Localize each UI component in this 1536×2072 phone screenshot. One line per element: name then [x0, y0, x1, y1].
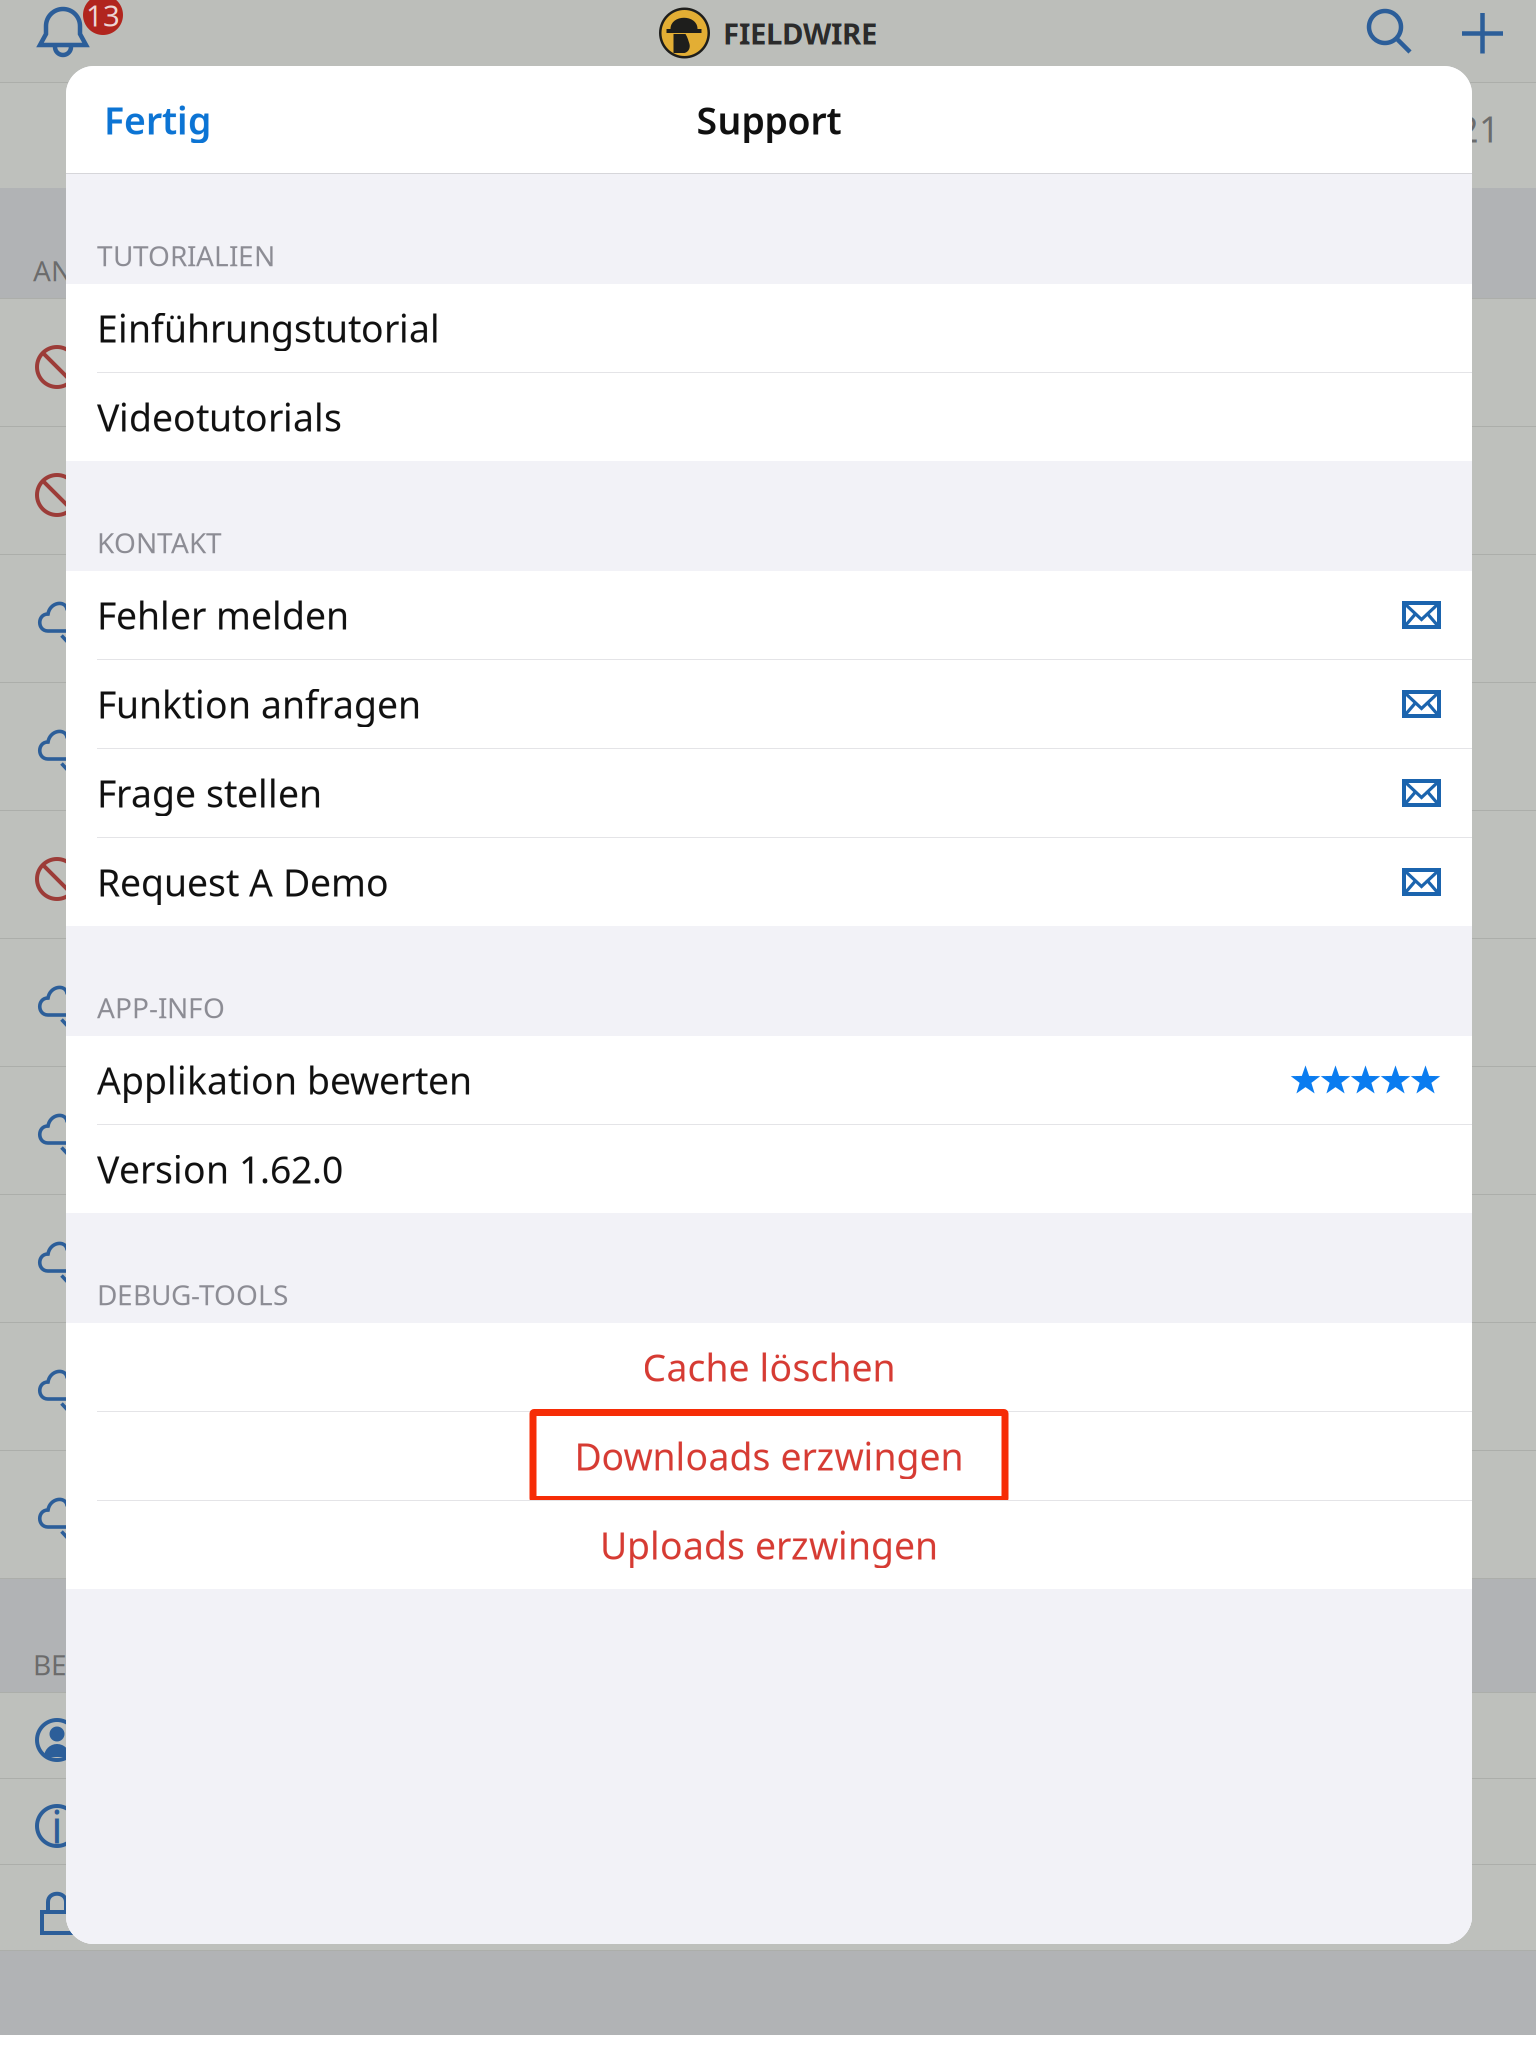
staticText: Downloads erzwingen — [574, 1431, 963, 1481]
staticText: Einführungstutorial — [97, 303, 440, 353]
button[interactable]: Funktion anfragen — [66, 660, 1472, 748]
staticText: Videotutorials — [97, 392, 342, 442]
button[interactable]: Videotutorials — [66, 373, 1472, 461]
button[interactable]: Downloadable view — [0, 1451, 1536, 1579]
staticText: Version 1.62.0 — [97, 1144, 343, 1194]
button[interactable]: Downloadable view — [0, 1067, 1536, 1195]
staticText: Fertig — [104, 95, 211, 145]
button[interactable]: Downloadable view — [0, 939, 1536, 1067]
button[interactable]: Hidden view — [0, 299, 1536, 427]
button[interactable]: Fehler melden — [66, 571, 1472, 659]
button[interactable]: Downloadable view — [0, 1195, 1536, 1323]
staticText: Request A Demo — [97, 857, 389, 907]
staticText: Cache löschen — [642, 1342, 895, 1392]
button[interactable]: Downloadable view — [0, 683, 1536, 811]
staticText: i — [51, 1796, 63, 1856]
staticText: APP-INFO — [97, 989, 225, 1026]
button[interactable]: Fertig — [84, 83, 231, 157]
staticText: Funktion anfragen — [97, 679, 421, 729]
button[interactable]: Uploads erzwingen — [66, 1501, 1472, 1589]
staticText: 13 — [86, 0, 120, 34]
staticText: DEBUG-TOOLS — [97, 1276, 288, 1313]
button[interactable]: Privacy — [0, 1865, 1536, 1951]
staticText: FIELDWIRE — [723, 13, 877, 52]
button[interactable]: Version 1.62.0 — [66, 1125, 1472, 1213]
staticText: Fehler melden — [97, 590, 349, 640]
button[interactable]: Downloads erzwingen — [66, 1412, 1472, 1500]
button[interactable]: Hidden view — [0, 811, 1536, 939]
staticText: TUTORIALIEN — [97, 237, 275, 274]
button[interactable]: Downloadable view — [0, 1323, 1536, 1451]
button[interactable]: Cache löschen — [66, 1323, 1472, 1411]
button[interactable]: Hidden view — [0, 427, 1536, 555]
button[interactable]: Applikation bewerten — [66, 1036, 1472, 1124]
button[interactable]: Profile — [0, 1693, 1536, 1779]
button[interactable]: About — [0, 1779, 1536, 1865]
staticText: BENUTZER — [33, 1646, 173, 1683]
staticText: Frage stellen — [97, 768, 322, 818]
button[interactable]: Einführungstutorial — [66, 284, 1472, 372]
button[interactable]: Notifications — [33, 2, 109, 64]
button[interactable]: Request A Demo — [66, 838, 1472, 926]
button[interactable]: Search — [1364, 7, 1416, 59]
button[interactable]: Frage stellen — [66, 749, 1472, 837]
staticText: 21 — [1458, 105, 1500, 152]
button[interactable]: Add — [1460, 10, 1505, 55]
button[interactable]: Downloadable view — [0, 555, 1536, 683]
staticText: Support — [696, 95, 841, 145]
staticText: ANSICHT — [33, 252, 151, 289]
staticText: Uploads erzwingen — [600, 1520, 938, 1570]
staticText: Applikation bewerten — [97, 1055, 472, 1105]
staticText: KONTAKT — [97, 524, 222, 561]
